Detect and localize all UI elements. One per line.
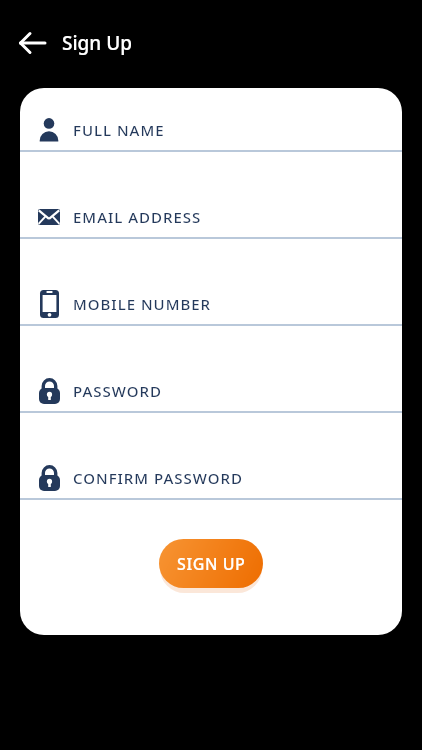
button[interactable]: EMAIL ADDRESS bbox=[20, 152, 402, 239]
button[interactable]: SIGN UP bbox=[159, 539, 263, 588]
staticText: EMAIL ADDRESS bbox=[73, 207, 202, 227]
staticText: SIGN UP bbox=[177, 553, 246, 575]
button[interactable]: MOBILE NUMBER bbox=[20, 239, 402, 326]
button[interactable]: PASSWORD bbox=[20, 326, 402, 413]
staticText: PASSWORD bbox=[73, 381, 162, 401]
staticText: FULL NAME bbox=[73, 120, 165, 140]
button[interactable]: FULL NAME bbox=[20, 88, 402, 152]
button[interactable] bbox=[10, 21, 54, 65]
staticText: MOBILE NUMBER bbox=[73, 294, 212, 314]
staticText: Sign Up bbox=[62, 30, 133, 56]
staticText: CONFIRM PASSWORD bbox=[73, 468, 243, 488]
button[interactable]: CONFIRM PASSWORD bbox=[20, 413, 402, 500]
